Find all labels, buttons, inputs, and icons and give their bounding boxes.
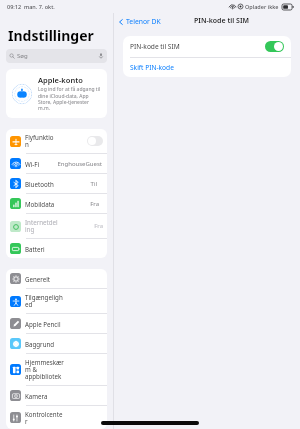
staticText: Telenor DK [126, 17, 161, 26]
button[interactable]: Wi-Fi [6, 154, 107, 173]
button[interactable]: Batteri [6, 239, 107, 258]
staticText: EnghouseGuest [57, 160, 102, 168]
staticText: Apple-konto [38, 75, 83, 85]
staticText: Flyfunktion [25, 133, 55, 149]
button[interactable]: Bluetooth [6, 174, 107, 193]
staticText: Generelt [25, 275, 51, 283]
button[interactable]: Generelt [6, 269, 107, 288]
staticText: Hjemmeskærm & appbibliotek [25, 358, 64, 381]
button[interactable]: Hjemmeskærm & appbibliotek [6, 354, 107, 385]
button[interactable]: Søg [6, 49, 107, 63]
button[interactable]: Internetdeling [6, 214, 107, 238]
staticText: Til [90, 180, 97, 188]
button[interactable]: Flyfunktion [6, 129, 107, 153]
staticText: Bluetooth [25, 180, 54, 188]
staticText: Batteri [25, 245, 45, 253]
button[interactable]: Kontrolcenter [6, 406, 107, 429]
staticText: Oplader ikke [245, 3, 279, 10]
staticText: Kamera [25, 392, 48, 400]
staticText: Baggrund [25, 340, 55, 348]
button[interactable]: Mobildata [6, 194, 107, 213]
staticText: Fra [94, 222, 103, 230]
staticText: Mobildata [25, 200, 55, 208]
staticText: Tilgængelighed [25, 293, 64, 309]
staticText: Søg [17, 52, 28, 60]
staticText: Indstillinger [8, 26, 94, 45]
button[interactable]: Baggrund [6, 334, 107, 353]
staticText: Apple Pencil [25, 320, 61, 328]
staticText: PIN-kode til SIM [130, 42, 180, 51]
staticText: PIN-kode til SIM [194, 16, 249, 26]
button[interactable]: Skift PIN-kode [123, 58, 291, 77]
button[interactable]: PIN-kode til SIM [265, 41, 284, 52]
button[interactable]: Telenor DK [114, 15, 165, 28]
button[interactable]: Slå til [87, 136, 103, 146]
staticText: Kontrolcenter [25, 410, 64, 425]
button[interactable]: PIN-kode til SIM [123, 36, 291, 57]
button[interactable]: Tilgængelighed [6, 289, 107, 313]
staticText: 09:12 man. 7. okt. [7, 3, 55, 10]
button[interactable]: Apple-konto [6, 69, 107, 118]
staticText: Wi-Fi [25, 160, 40, 168]
staticText: Fra [90, 200, 99, 208]
staticText: Log ind for at få adgang til dine iCloud… [38, 86, 102, 112]
staticText: Internetdeling [25, 218, 59, 234]
button[interactable]: Apple Pencil [6, 314, 107, 333]
button[interactable]: Kamera [6, 386, 107, 405]
staticText: Skift PIN-kode [130, 63, 174, 72]
